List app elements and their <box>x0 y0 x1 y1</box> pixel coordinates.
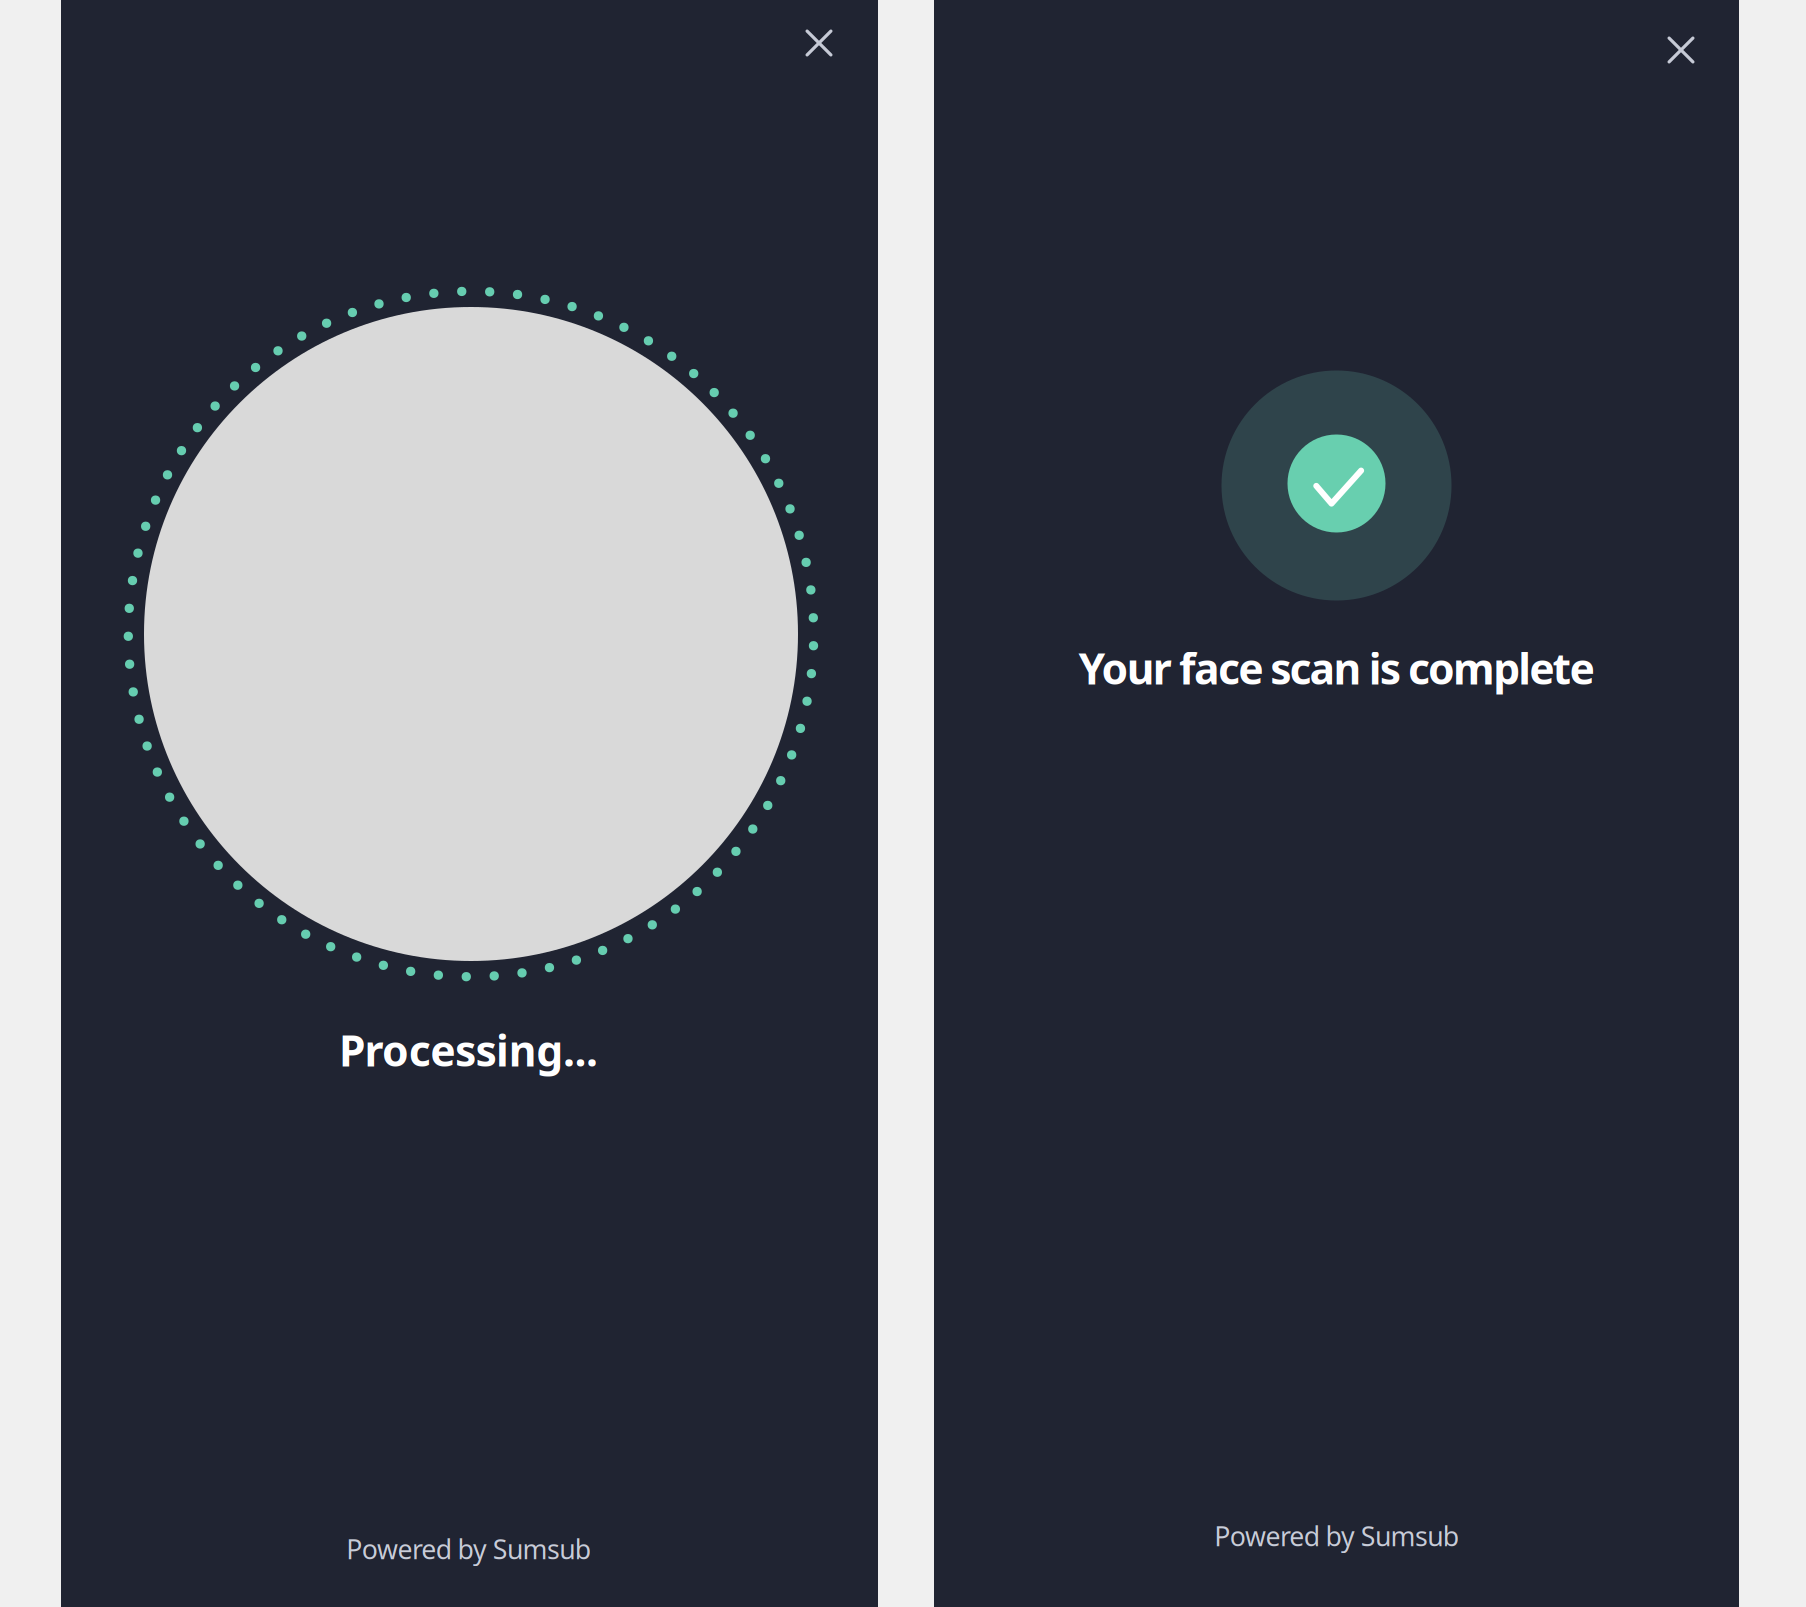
button[interactable]: Close <box>786 10 852 76</box>
staticText: Powered by Sumsub <box>346 1531 591 1567</box>
staticText: Processing... <box>339 1022 598 1078</box>
staticText: Your face scan is complete <box>1078 640 1594 696</box>
staticText: Powered by Sumsub <box>1214 1518 1459 1554</box>
button[interactable]: Close <box>1648 17 1714 83</box>
